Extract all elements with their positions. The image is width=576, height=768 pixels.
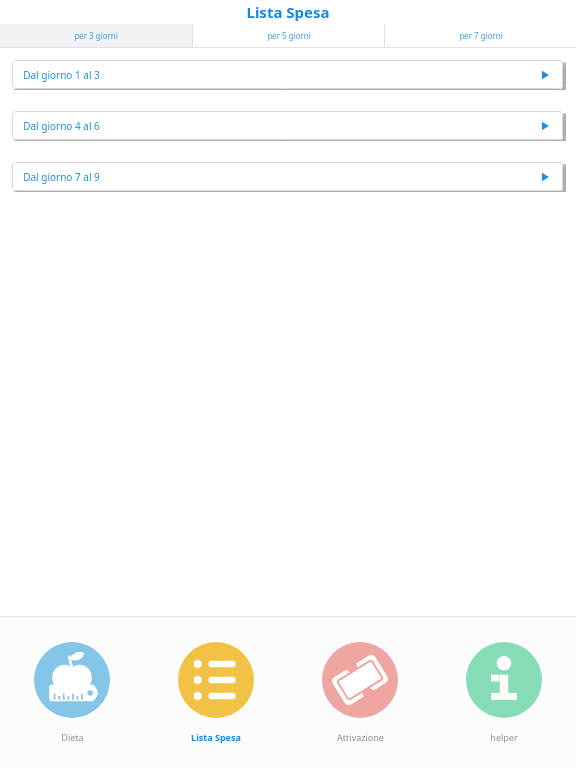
button[interactable]: per 5 giorni bbox=[193, 24, 384, 47]
staticText: Attivazione bbox=[337, 731, 384, 743]
button[interactable]: Dal giorno 4 al 6 bbox=[12, 111, 563, 140]
staticText: Dal giorno 7 al 9 bbox=[23, 170, 100, 184]
staticText: per 5 giorni bbox=[267, 30, 311, 41]
staticText: Lista Spesa bbox=[246, 2, 330, 22]
button[interactable]: helper bbox=[432, 617, 576, 743]
button[interactable]: Attivazione bbox=[288, 617, 432, 743]
button[interactable]: Dieta bbox=[0, 617, 144, 743]
button[interactable]: Dal giorno 7 al 9 bbox=[12, 162, 563, 191]
staticText: helper bbox=[490, 731, 518, 743]
staticText: Dal giorno 1 al 3 bbox=[23, 68, 100, 82]
button[interactable]: Lista Spesa bbox=[144, 617, 288, 743]
staticText: Dal giorno 4 al 6 bbox=[23, 119, 100, 133]
button[interactable]: per 3 giorni bbox=[0, 24, 192, 47]
button[interactable]: per 7 giorni bbox=[385, 24, 576, 47]
staticText: per 7 giorni bbox=[459, 30, 503, 41]
staticText: Lista Spesa bbox=[191, 731, 241, 743]
staticText: per 3 giorni bbox=[74, 30, 118, 41]
staticText: Dieta bbox=[61, 731, 84, 743]
button[interactable]: Dal giorno 1 al 3 bbox=[12, 60, 563, 89]
